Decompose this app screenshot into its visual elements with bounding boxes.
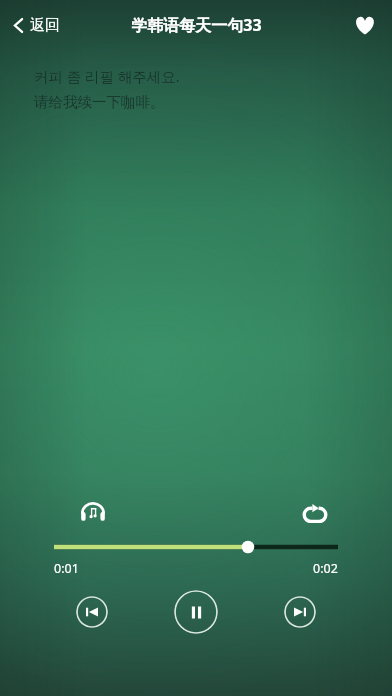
staticText: 返回 — [30, 16, 60, 35]
button[interactable]: Pause — [174, 590, 218, 634]
staticText: 学韩语每天一句33 — [131, 14, 262, 36]
button[interactable]: Repeat — [298, 500, 332, 527]
staticText: 0:02 — [313, 560, 338, 577]
button[interactable]: Favorite — [338, 5, 392, 46]
button[interactable]: Previous — [76, 596, 108, 628]
staticText: 커피 좀 리필 해주세요. — [34, 66, 180, 86]
staticText: 请给我续一下咖啡。 — [34, 93, 165, 111]
button[interactable]: Next — [284, 596, 316, 628]
button[interactable]: Seek bar — [0, 539, 392, 555]
button[interactable]: Audio mode — [76, 498, 110, 529]
staticText: 0:01 — [54, 560, 79, 577]
button[interactable]: 返回 — [0, 7, 76, 44]
